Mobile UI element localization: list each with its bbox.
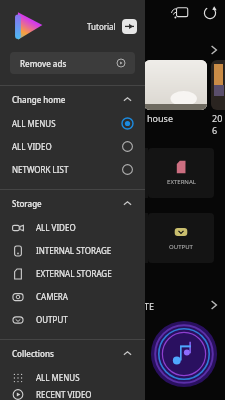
staticText: ALL VIDEO	[36, 222, 76, 233]
button[interactable]: ALL MENUS	[0, 112, 145, 135]
button[interactable]	[211, 60, 225, 110]
button[interactable]: INTERNAL STORAGE	[0, 239, 145, 262]
button[interactable]: NETWORK LIST	[0, 158, 145, 181]
staticText: Change home	[12, 94, 123, 105]
staticText: Storage	[12, 198, 123, 209]
button[interactable]: CAMERA	[0, 285, 145, 308]
button[interactable]: More	[206, 42, 222, 58]
button[interactable]: Storage	[0, 190, 145, 216]
button[interactable]	[144, 60, 207, 110]
staticText: 20 6	[212, 112, 223, 136]
staticText: EXTERNAL STORAGE	[36, 268, 112, 279]
staticText: OUTPUT	[169, 243, 193, 251]
button[interactable]: Change home	[0, 86, 145, 112]
staticText: ALL MENUS	[36, 372, 80, 383]
button[interactable]: Refresh	[200, 3, 220, 23]
staticText: CAMERA	[36, 291, 68, 302]
button[interactable]: EXTERNAL STORAGE	[0, 262, 145, 285]
button[interactable]: RECENT VIDEO	[0, 389, 145, 400]
button[interactable]: More	[206, 297, 222, 313]
button[interactable]: EXTERNAL	[148, 148, 214, 198]
button[interactable]: Cast	[171, 3, 191, 23]
staticText: Collections	[12, 348, 123, 359]
staticText: INTERNAL STORAGE	[36, 245, 112, 256]
staticText: house	[147, 112, 173, 124]
button[interactable]: ALL VIDEO	[0, 216, 145, 239]
button[interactable]: Collections	[0, 340, 145, 366]
staticText: Tutorial	[87, 21, 116, 32]
button[interactable]: ALL MENUS	[0, 366, 145, 389]
button[interactable]: OUTPUT	[148, 213, 214, 263]
staticText: RECENT VIDEO	[36, 389, 92, 400]
staticText: ALL MENUS	[12, 118, 122, 129]
staticText: Remove ads	[20, 58, 67, 69]
staticText: OUTPUT	[36, 314, 68, 325]
button[interactable]: Remove ads	[10, 52, 135, 74]
button[interactable]: ALL VIDEO	[0, 135, 145, 158]
button[interactable]: Tutorial	[87, 19, 137, 34]
button[interactable]: OUTPUT	[0, 308, 145, 331]
staticText: TE	[144, 300, 155, 312]
staticText: NETWORK LIST	[12, 164, 122, 175]
staticText: EXTERNAL	[167, 178, 196, 186]
staticText: ALL VIDEO	[12, 141, 122, 152]
